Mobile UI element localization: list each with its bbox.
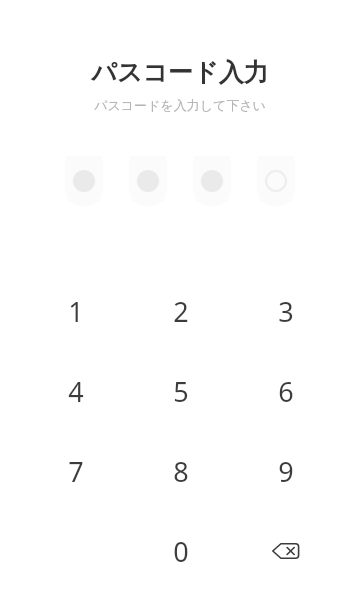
staticText: パスコードを入力して下さい <box>94 97 266 113</box>
staticText: 7 <box>68 453 84 490</box>
button[interactable]: 5 <box>128 351 233 431</box>
button[interactable]: 1 <box>23 271 128 351</box>
staticText: 6 <box>278 373 294 410</box>
button[interactable]: Backspace <box>233 511 338 591</box>
staticText: 1 <box>68 293 84 330</box>
staticText: 0 <box>173 533 189 570</box>
button[interactable]: 4 <box>23 351 128 431</box>
staticText: 3 <box>278 293 294 330</box>
button[interactable]: 6 <box>233 351 338 431</box>
button[interactable]: 2 <box>128 271 233 351</box>
button[interactable]: 9 <box>233 431 338 511</box>
staticText: 4 <box>68 373 84 410</box>
button[interactable]: 8 <box>128 431 233 511</box>
button[interactable]: 7 <box>23 431 128 511</box>
button[interactable]: 0 <box>128 511 233 591</box>
staticText: 2 <box>173 293 189 330</box>
staticText: 8 <box>173 453 189 490</box>
button[interactable]: 3 <box>233 271 338 351</box>
staticText: パスコード入力 <box>91 57 269 88</box>
staticText: 9 <box>278 453 294 490</box>
staticText: 5 <box>173 373 189 410</box>
